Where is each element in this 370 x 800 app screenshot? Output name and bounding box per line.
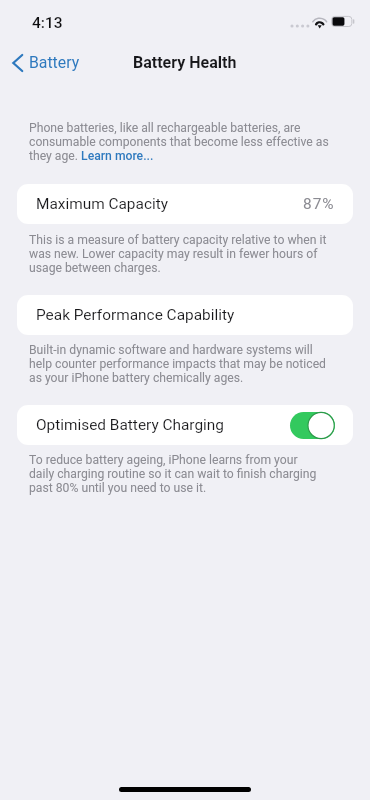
staticText: This is a measure of battery capacity re… [29, 233, 327, 275]
button[interactable]: Maximum Capacity [17, 184, 353, 224]
staticText: Peak Performance Capability [36, 306, 235, 324]
staticText: 87% [303, 195, 335, 213]
button[interactable]: Optimised Battery Charging toggle [290, 412, 335, 439]
staticText: Battery Health [133, 53, 237, 72]
staticText: Phone batteries, like all rechargeable b… [29, 121, 329, 163]
staticText: Optimised Battery Charging [36, 416, 224, 434]
button[interactable]: Peak Performance Capability [17, 295, 353, 335]
staticText: Battery [29, 53, 80, 72]
staticText: Built-in dynamic software and hardware s… [29, 343, 326, 385]
staticText: Maximum Capacity [36, 195, 169, 213]
staticText: To reduce battery ageing, iPhone learns … [29, 453, 317, 495]
button[interactable]: Optimised Battery Charging [17, 405, 353, 445]
button[interactable]: Battery [6, 47, 88, 78]
staticText: 4:13 [32, 14, 63, 32]
